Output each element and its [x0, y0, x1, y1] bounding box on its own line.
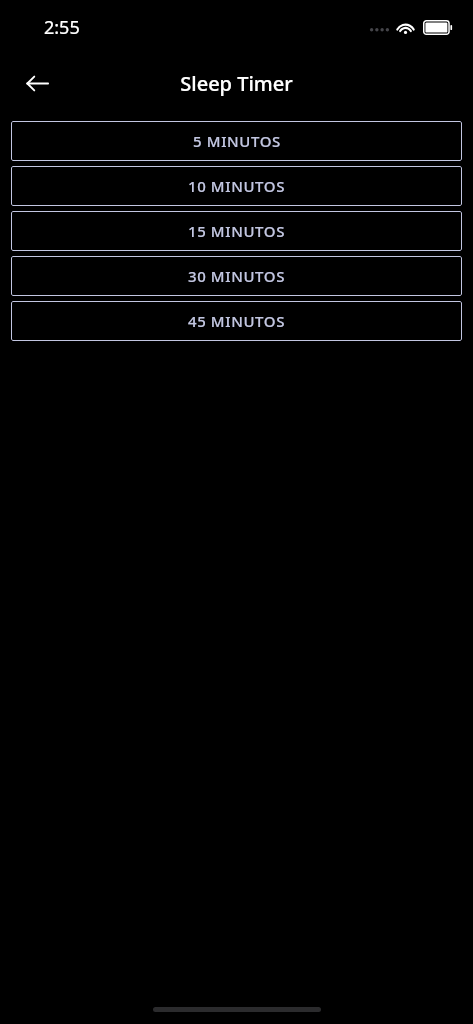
- staticText: 30 MINUTOS: [188, 266, 285, 286]
- button[interactable]: 10 MINUTOS: [11, 166, 462, 206]
- staticText: 45 MINUTOS: [188, 311, 285, 331]
- staticText: Sleep Timer: [180, 70, 293, 97]
- button[interactable]: Back: [13, 59, 61, 107]
- button[interactable]: 5 MINUTOS: [11, 121, 462, 161]
- staticText: 15 MINUTOS: [188, 221, 285, 241]
- button[interactable]: 45 MINUTOS: [11, 301, 462, 341]
- button[interactable]: 30 MINUTOS: [11, 256, 462, 296]
- staticText: 5 MINUTOS: [193, 131, 281, 151]
- staticText: 2:55: [44, 15, 80, 40]
- button[interactable]: 15 MINUTOS: [11, 211, 462, 251]
- staticText: 10 MINUTOS: [188, 176, 285, 196]
